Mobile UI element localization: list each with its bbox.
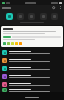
button[interactable]: [1, 26, 63, 47]
button[interactable]: [15, 42, 18, 45]
button[interactable]: [3, 42, 6, 45]
button[interactable]: [11, 42, 14, 45]
button[interactable]: Quick action: [51, 13, 58, 20]
button[interactable]: Quick action: [17, 13, 24, 20]
button[interactable]: [19, 42, 22, 45]
button[interactable]: [7, 42, 10, 45]
button[interactable]: [0, 88, 64, 92]
button[interactable]: Home gesture: [25, 97, 39, 98]
button[interactable]: Quick action: [6, 13, 13, 20]
button[interactable]: Quick action: [28, 13, 35, 20]
button[interactable]: [0, 56, 64, 64]
button[interactable]: [0, 48, 64, 56]
button[interactable]: [2, 7, 11, 9]
button[interactable]: Search: [52, 6, 56, 10]
button[interactable]: [0, 64, 64, 72]
button[interactable]: [0, 72, 64, 80]
button[interactable]: More options: [58, 6, 62, 10]
button[interactable]: Quick action: [40, 13, 47, 20]
button[interactable]: [0, 80, 64, 88]
